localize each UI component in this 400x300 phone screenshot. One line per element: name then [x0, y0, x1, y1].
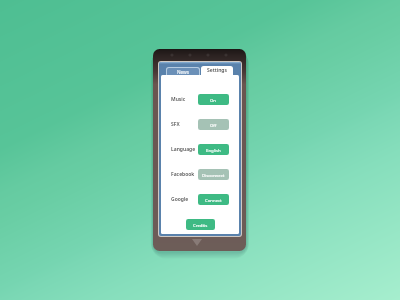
staticText: Settings	[207, 67, 227, 74]
staticText: On	[210, 97, 217, 103]
staticText: SFX	[171, 121, 180, 128]
staticText: English	[206, 147, 221, 153]
button[interactable]: English	[198, 144, 229, 155]
button[interactable]: Credits	[186, 219, 215, 230]
button[interactable]: Back	[192, 239, 202, 246]
button[interactable]: On	[198, 94, 229, 105]
staticText: Music	[171, 96, 186, 103]
button[interactable]: Settings	[201, 66, 233, 75]
staticText: Off	[210, 122, 217, 128]
staticText: News	[177, 69, 190, 75]
staticText: Google	[171, 196, 189, 203]
staticText: Disconnect	[202, 172, 225, 178]
button[interactable]: Off	[198, 119, 229, 130]
staticText: Credits	[193, 222, 208, 228]
button[interactable]: News	[166, 67, 200, 76]
staticText: Facebook	[171, 171, 195, 178]
staticText: Connect	[205, 197, 222, 203]
staticText: Language	[171, 146, 196, 153]
button[interactable]: Connect	[198, 194, 229, 205]
button[interactable]: Disconnect	[198, 169, 229, 180]
